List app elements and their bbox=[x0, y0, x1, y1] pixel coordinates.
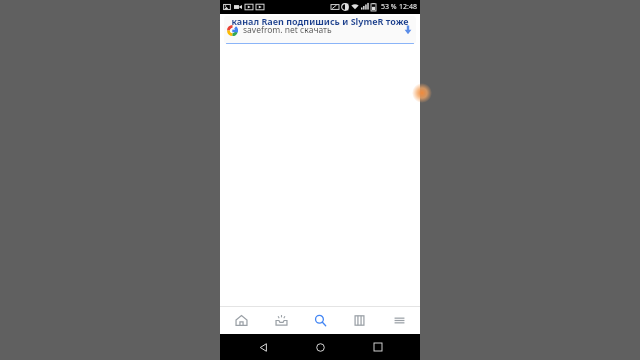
staticText: канал Raen подпишись и SlymeR тоже bbox=[224, 15, 416, 27]
staticText: savefrom. net скачать bbox=[243, 24, 332, 36]
staticText: 53 % bbox=[381, 2, 397, 12]
button[interactable]: savefrom. net скачать bbox=[224, 16, 416, 44]
button[interactable]: Menu bbox=[381, 307, 417, 334]
button[interactable]: Tabs bbox=[341, 307, 377, 334]
staticText: 12:48 bbox=[399, 2, 417, 12]
other: Download bbox=[403, 25, 413, 35]
button[interactable]: Home bbox=[305, 334, 335, 360]
button[interactable]: Search bbox=[302, 307, 338, 334]
button[interactable]: Home bbox=[223, 307, 259, 334]
button[interactable]: Back bbox=[248, 334, 278, 360]
button[interactable]: Downloads bbox=[263, 307, 299, 334]
button[interactable]: Recents bbox=[363, 334, 393, 360]
